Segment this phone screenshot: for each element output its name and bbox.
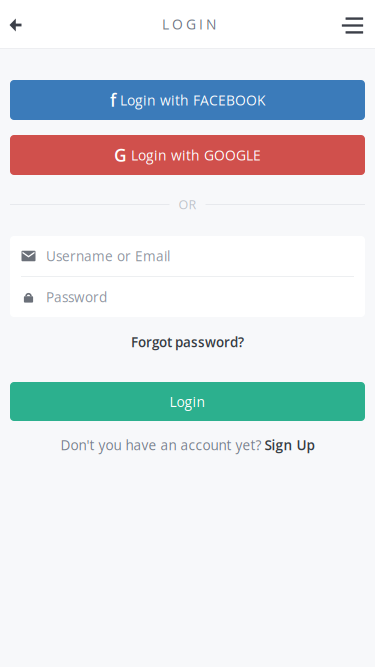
button[interactable]: Forgot password? <box>10 328 365 356</box>
staticText: Login with GOOGLE <box>131 146 261 164</box>
staticText: Username or Email <box>46 247 170 265</box>
staticText: Login with FACEBOOK <box>120 91 265 109</box>
staticText: f <box>110 88 116 112</box>
staticText: OR <box>178 196 196 213</box>
button[interactable]: Login <box>10 382 365 421</box>
staticText: Sign Up <box>264 436 314 454</box>
button[interactable]: Password <box>10 277 365 317</box>
staticText: Login <box>169 392 205 411</box>
staticText: Don't you have an account yet? <box>60 436 261 454</box>
staticText: LOGIN <box>162 15 216 33</box>
staticText: G <box>114 143 127 167</box>
button[interactable]: Sign Up <box>264 436 314 454</box>
button[interactable]: Username or Email <box>10 236 365 276</box>
button[interactable]: f <box>10 80 365 120</box>
button[interactable]: Back <box>0 0 31 49</box>
button[interactable]: Menu <box>337 0 368 49</box>
button[interactable]: G <box>10 135 365 175</box>
staticText: Forgot password? <box>131 333 244 351</box>
staticText: Password <box>46 288 107 306</box>
